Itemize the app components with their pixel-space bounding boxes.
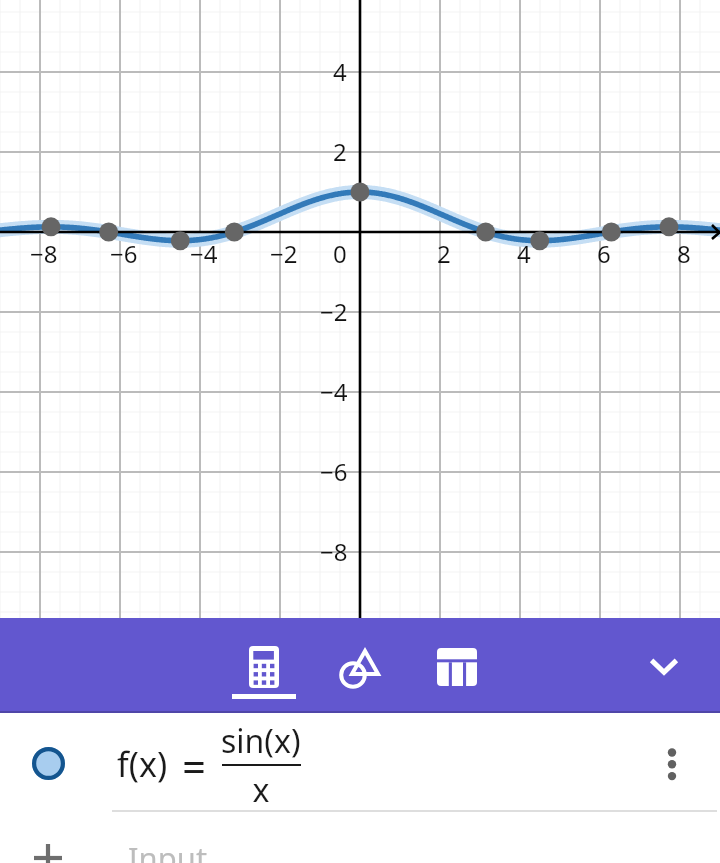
staticText: −4 xyxy=(190,237,218,270)
staticText: 2 xyxy=(333,135,347,168)
staticText: −2 xyxy=(320,295,348,328)
staticText: = xyxy=(182,737,207,794)
staticText: sin(x) xyxy=(221,719,301,763)
staticText: x xyxy=(221,768,301,812)
staticText: Input xyxy=(128,837,208,863)
staticText: −8 xyxy=(30,237,58,270)
staticText: f(x) xyxy=(117,741,168,787)
button[interactable]: Geometry xyxy=(312,618,408,713)
staticText: 0 xyxy=(333,237,347,270)
staticText: 4 xyxy=(333,55,347,88)
staticText: −8 xyxy=(320,535,348,568)
staticText: 2 xyxy=(437,237,451,270)
staticText: 6 xyxy=(597,237,611,270)
staticText: 4 xyxy=(517,237,531,270)
button[interactable]: Table xyxy=(409,618,505,713)
staticText: 8 xyxy=(677,237,691,270)
button[interactable]: Toggle visibility xyxy=(32,747,65,780)
staticText: −6 xyxy=(110,237,138,270)
button[interactable]: More options xyxy=(632,713,712,812)
staticText: −2 xyxy=(270,237,298,270)
button[interactable]: Calculator xyxy=(216,618,312,713)
button[interactable]: Collapse xyxy=(616,618,712,713)
staticText: −6 xyxy=(320,455,348,488)
button[interactable]: Input xyxy=(0,813,720,863)
staticText: −4 xyxy=(320,375,348,408)
